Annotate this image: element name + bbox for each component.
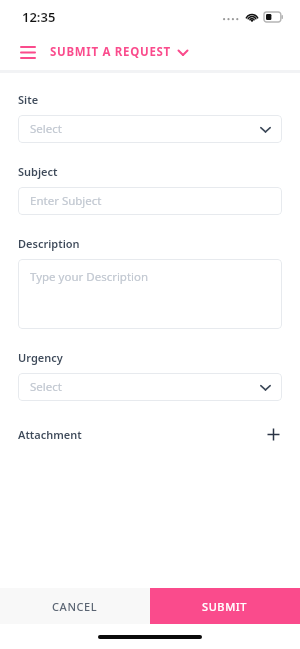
staticText: Attachment [18, 427, 82, 442]
button[interactable]: Attachment [18, 423, 282, 445]
staticText: Type your Description [30, 269, 149, 285]
staticText: Select [30, 379, 62, 395]
staticText: Enter Subject [30, 193, 102, 209]
staticText: 12:35 [22, 8, 56, 26]
button[interactable]: Enter Subject [18, 187, 282, 215]
staticText: CANCEL [52, 599, 98, 614]
button[interactable]: Type your Description [18, 259, 282, 329]
staticText: SUBMIT [202, 599, 248, 614]
staticText: Select [30, 121, 62, 137]
staticText: SUBMIT A REQUEST [50, 44, 171, 60]
staticText: Site [18, 92, 39, 107]
staticText: Description [18, 236, 80, 251]
button[interactable]: CANCEL [0, 588, 150, 624]
staticText: Urgency [18, 350, 63, 365]
other: Add attachment [264, 425, 282, 443]
button[interactable]: Select [18, 373, 282, 401]
button[interactable]: SUBMIT [150, 588, 300, 624]
button[interactable]: SUBMIT A REQUEST [50, 44, 188, 60]
staticText: Subject [18, 164, 58, 179]
button[interactable]: Select [18, 115, 282, 143]
button[interactable]: Menu [17, 42, 39, 62]
